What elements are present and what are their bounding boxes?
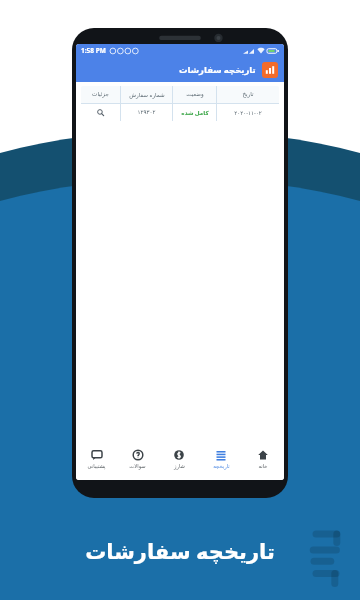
button[interactable]: خانه (242, 446, 284, 480)
staticText: پشتیبانی (87, 463, 106, 469)
staticText: سوالات (129, 463, 146, 469)
staticText: کامل شده (181, 109, 209, 117)
button[interactable]: سوالات (117, 446, 158, 480)
staticText: ۲۰۲۰-۱۱-۰۲ (234, 109, 262, 117)
button[interactable]: شارژ (158, 446, 200, 480)
staticText: ۱۲۹۳۰۲ (137, 109, 156, 116)
staticText: تاریخچه سفارشات (179, 64, 256, 76)
button[interactable]: View details (81, 104, 120, 121)
staticText: خانه (258, 463, 268, 469)
staticText: وضعیت (186, 91, 204, 98)
staticText: جزئیات (92, 91, 109, 98)
staticText: شماره سفارش (129, 91, 165, 99)
staticText: 1:58 PM (81, 46, 106, 55)
button[interactable]: Orders chart (262, 62, 278, 78)
staticText: تاریخچه سفارشات (85, 537, 275, 566)
staticText: تاریخ (242, 91, 254, 98)
staticText: تاریخچه (213, 463, 230, 469)
button[interactable]: پشتیبانی (76, 446, 117, 480)
staticText: شارژ (174, 463, 185, 469)
button[interactable]: تاریخچه (200, 446, 242, 480)
